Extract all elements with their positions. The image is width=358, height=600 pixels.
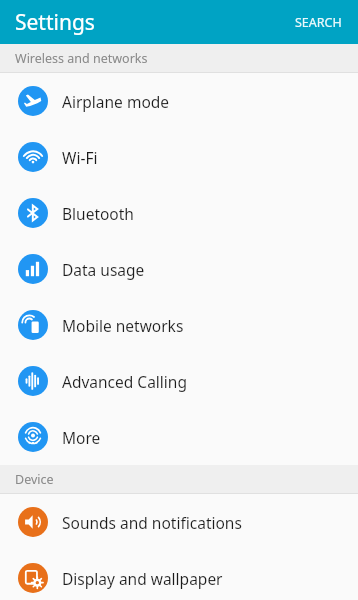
staticText: Display and wallpaper xyxy=(62,568,223,589)
staticText: Mobile networks xyxy=(62,315,184,336)
button[interactable]: Sounds and notifications xyxy=(0,494,358,550)
button[interactable]: More xyxy=(0,409,358,465)
staticText: Data usage xyxy=(62,259,145,280)
staticText: SEARCH xyxy=(295,14,342,31)
staticText: Device xyxy=(15,471,54,488)
staticText: Advanced Calling xyxy=(62,371,187,392)
button[interactable]: Data usage xyxy=(0,241,358,297)
button[interactable]: Wi-Fi xyxy=(0,129,358,185)
button[interactable]: Airplane mode xyxy=(0,73,358,129)
button[interactable]: SEARCH xyxy=(279,4,358,41)
staticText: Bluetooth xyxy=(62,203,134,224)
button[interactable]: Advanced Calling xyxy=(0,353,358,409)
staticText: Settings xyxy=(15,8,95,37)
staticText: Wi-Fi xyxy=(62,147,98,168)
button[interactable]: Mobile networks xyxy=(0,297,358,353)
button[interactable]: Display and wallpaper xyxy=(0,550,358,600)
staticText: More xyxy=(62,427,101,448)
staticText: Sounds and notifications xyxy=(62,512,242,533)
button[interactable]: Bluetooth xyxy=(0,185,358,241)
staticText: Airplane mode xyxy=(62,91,170,112)
staticText: Wireless and networks xyxy=(15,50,148,67)
